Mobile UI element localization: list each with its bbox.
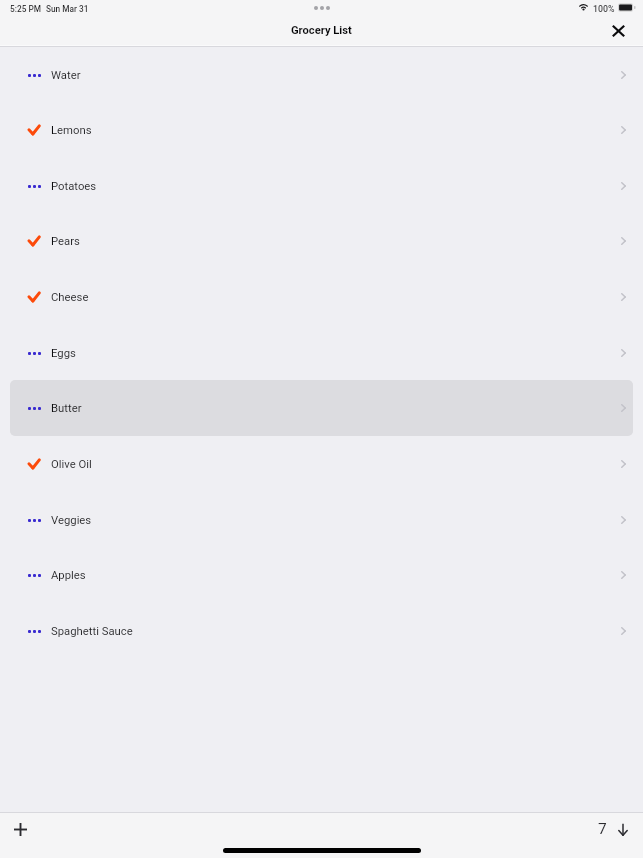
button[interactable]: Veggies [10,492,633,548]
staticText: Cheese [51,291,89,304]
button[interactable]: Add item [7,816,33,842]
staticText: Butter [51,402,82,415]
staticText: Grocery List [291,24,352,37]
staticText: Spaghetti Sauce [51,625,133,638]
button[interactable]: Potatoes [10,158,633,214]
staticText: Lemons [51,124,92,137]
staticText: 5:25 PM [10,4,41,14]
button[interactable]: Butter [10,380,633,436]
staticText: 7 [598,820,607,838]
staticText: Eggs [51,347,76,360]
staticText: Sun Mar 31 [46,4,89,14]
button[interactable]: Cheese [10,269,633,325]
staticText: Water [51,69,81,82]
staticText: Olive Oil [51,458,92,471]
button[interactable]: Eggs [10,325,633,381]
staticText: 100% [593,4,615,14]
button[interactable]: Lemons [10,102,633,158]
staticText: Potatoes [51,180,97,193]
staticText: Veggies [51,514,92,527]
button[interactable]: Multitasking controls [314,6,330,10]
staticText: Apples [51,569,86,582]
button[interactable]: Spaghetti Sauce [10,603,633,659]
button[interactable]: Move down [610,816,636,842]
button[interactable]: Apples [10,547,633,603]
button[interactable]: Water [10,47,633,103]
button[interactable]: Close [606,19,630,42]
button[interactable]: Pears [10,213,633,269]
button[interactable]: Olive Oil [10,436,633,492]
staticText: Pears [51,235,80,248]
